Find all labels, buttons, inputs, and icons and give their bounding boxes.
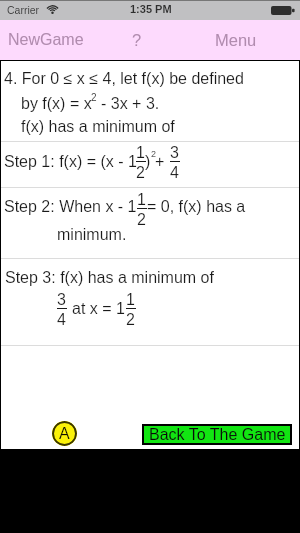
staticText: Step 2: When x - 1: [4, 198, 137, 216]
staticText: by f(x) = x: [21, 95, 92, 113]
staticText: 3: [170, 144, 179, 162]
staticText: 1:35 PM: [130, 3, 172, 15]
staticText: = 0, f(x) has a: [147, 198, 246, 216]
staticText: f(x) has a minimum of: [21, 118, 175, 136]
staticText: 1: [137, 191, 146, 209]
staticText: 2: [136, 164, 145, 182]
staticText: 3: [57, 291, 66, 309]
button[interactable]: Menu: [206, 20, 266, 60]
staticText: 1: [126, 291, 135, 309]
button[interactable]: NewGame: [4, 20, 94, 60]
staticText: ): [145, 153, 151, 171]
staticText: Carrier: [7, 4, 40, 16]
staticText: Step 3: f(x) has a minimum of: [5, 269, 214, 287]
staticText: 4: [57, 311, 66, 329]
button[interactable]: Back To The Game: [142, 424, 292, 445]
staticText: 2: [137, 211, 146, 229]
staticText: A: [59, 425, 70, 443]
staticText: Step 1: f(x) = (x - 1: [4, 153, 137, 171]
button[interactable]: Answer A: [52, 421, 77, 446]
staticText: 2: [151, 149, 157, 159]
staticText: NewGame: [8, 31, 84, 49]
staticText: Back To The Game: [149, 426, 286, 444]
staticText: minimum.: [57, 226, 127, 244]
staticText: 2: [91, 92, 97, 103]
staticText: Menu: [215, 31, 257, 49]
staticText: ?: [132, 31, 142, 49]
staticText: at x = 1: [72, 300, 125, 318]
button[interactable]: ?: [122, 20, 152, 60]
staticText: 1: [136, 144, 145, 162]
staticText: 4. For 0 ≤ x ≤ 4, let f(x) be defined: [4, 70, 244, 88]
staticText: 2: [126, 311, 135, 329]
staticText: - 3x + 3.: [101, 95, 160, 113]
staticText: +: [155, 153, 165, 171]
staticText: 4: [170, 164, 179, 182]
